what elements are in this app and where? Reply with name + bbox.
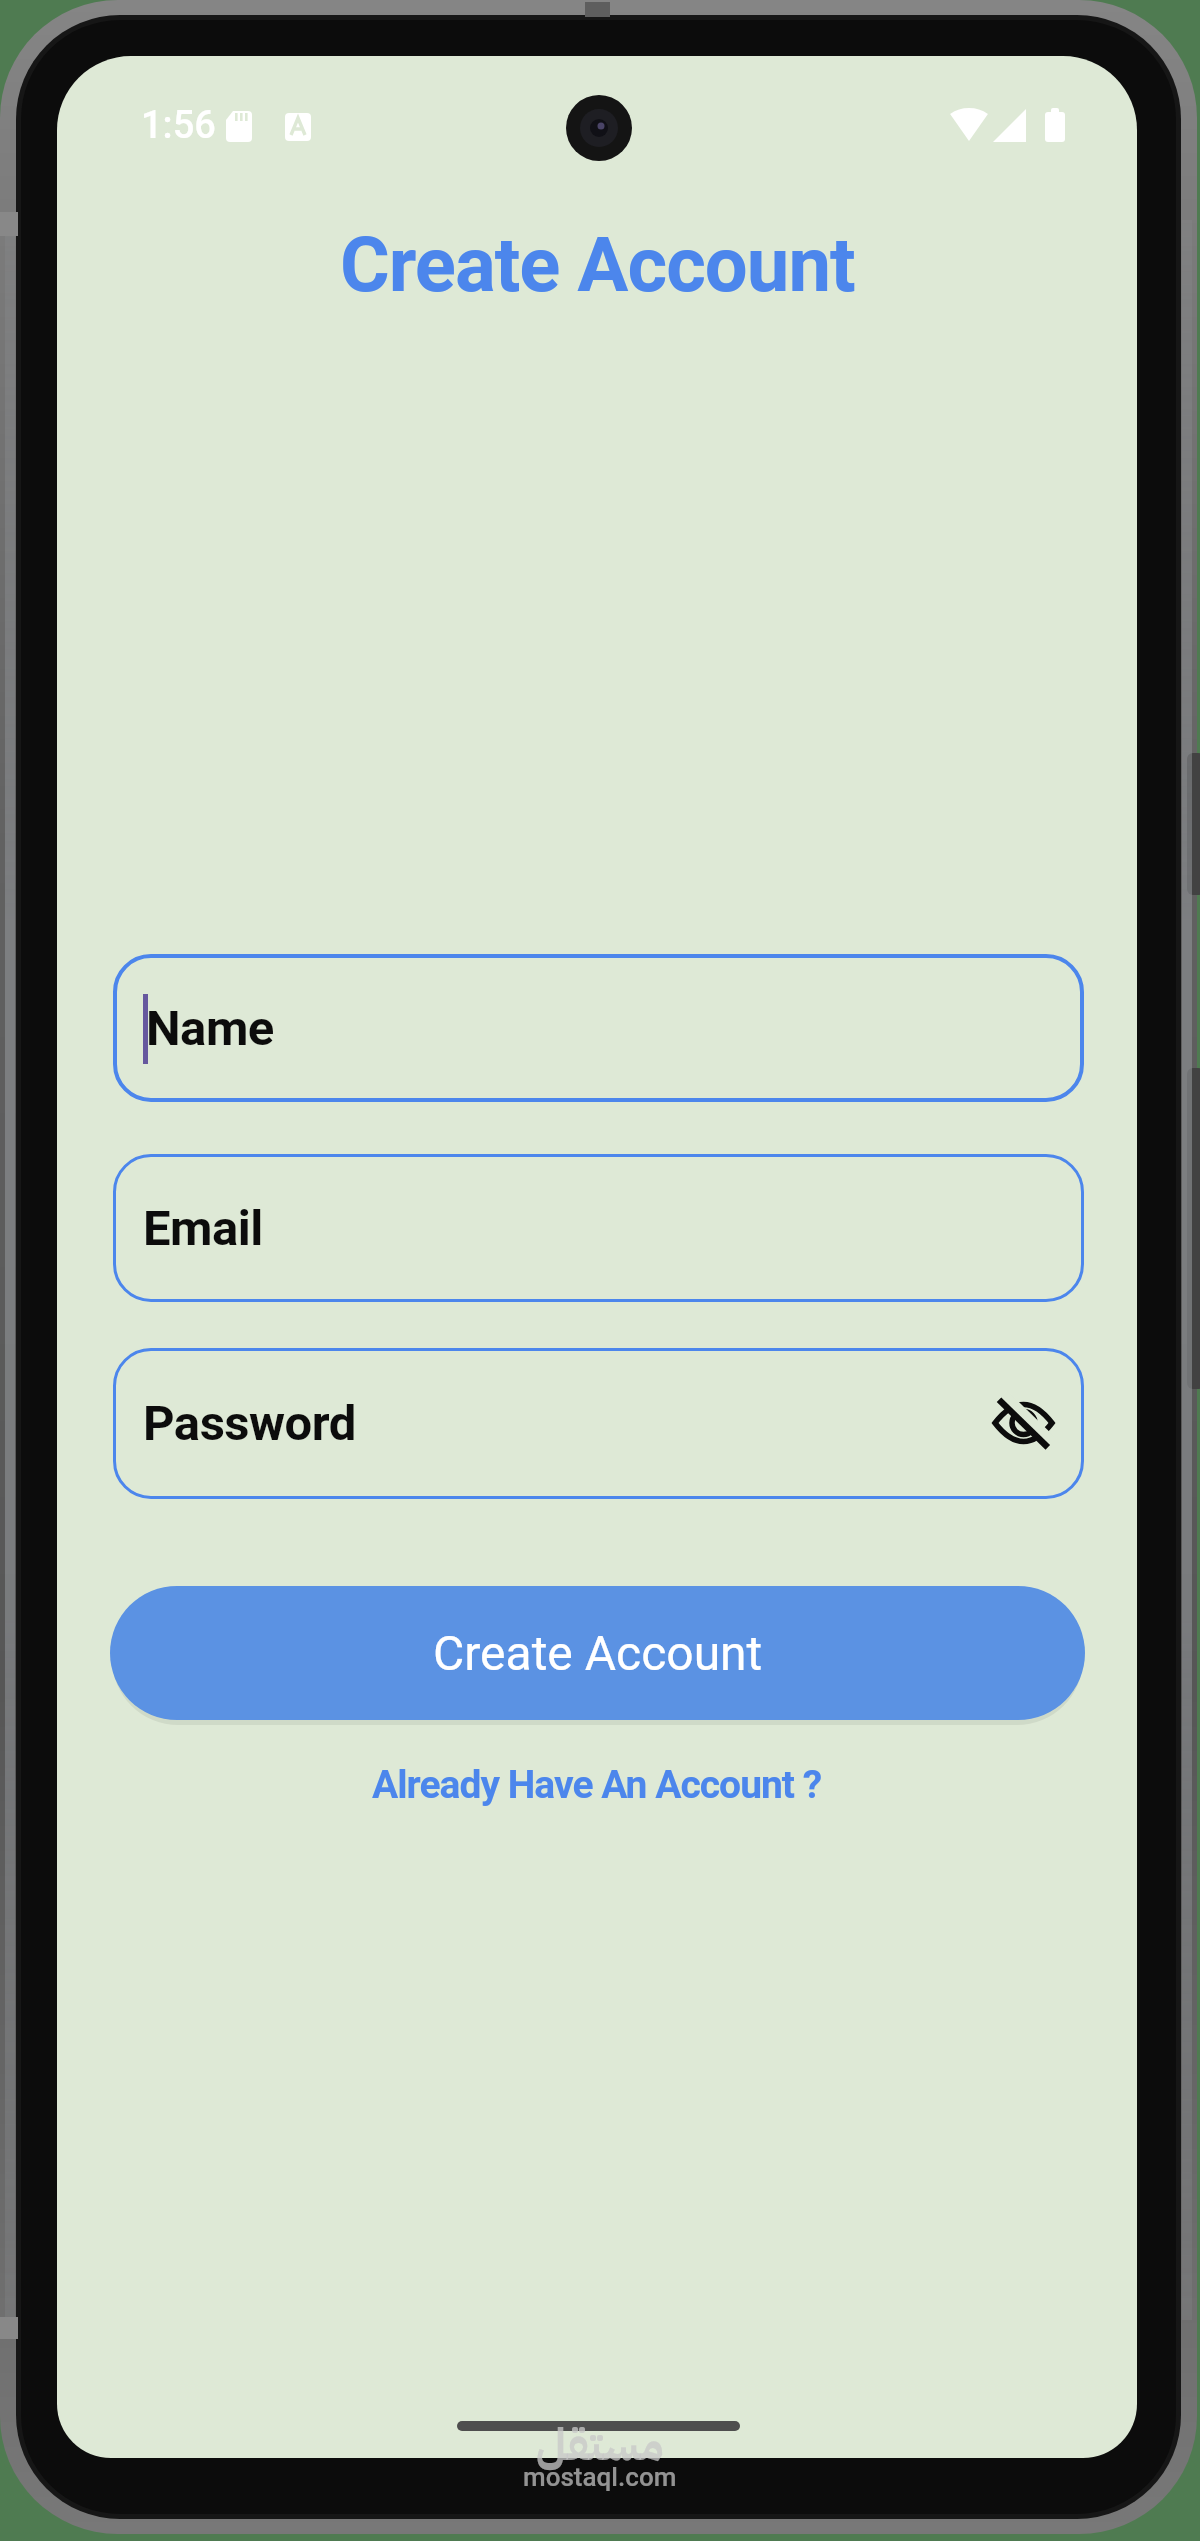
button[interactable]: Password [113, 1348, 1084, 1499]
button[interactable]: Email [113, 1154, 1084, 1302]
button[interactable]: Already Have An Account ? [57, 1759, 1137, 1811]
staticText: Name [146, 1000, 274, 1057]
staticText: Email [143, 1200, 263, 1257]
staticText: 1:56 [141, 103, 216, 147]
staticText: Create Account [340, 220, 855, 309]
staticText: mostaql.com [523, 2462, 677, 2492]
staticText: Already Have An Account ? [372, 1762, 822, 1808]
button[interactable]: Create Account [110, 1586, 1085, 1720]
staticText: Password [143, 1395, 356, 1452]
button[interactable]: Name [113, 954, 1084, 1102]
staticText: Create Account [433, 1625, 763, 1681]
staticText: مستقل [536, 2412, 664, 2478]
